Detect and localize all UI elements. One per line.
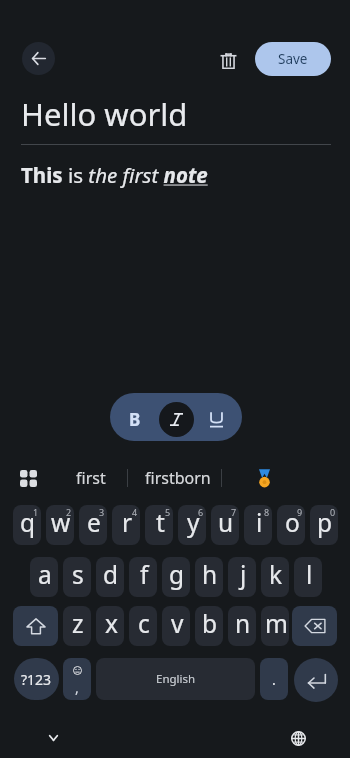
staticText: 8 [264,506,270,518]
staticText: This is the first note [21,161,208,189]
staticText: r [122,506,133,539]
staticText: 2 [66,506,72,518]
staticText: 7 [231,506,237,518]
staticText: n [235,607,251,640]
button[interactable]: English [96,658,255,700]
button[interactable]: c [129,606,157,646]
staticText: a [38,558,52,591]
staticText: d [103,558,119,591]
staticText: p [317,506,333,539]
staticText: x [105,607,118,640]
button[interactable]: firstborn [133,456,223,500]
button[interactable]: Change language [278,718,318,758]
staticText: firstborn [145,467,211,489]
button[interactable]: ?123 [14,658,59,700]
staticText: f [140,558,149,591]
button[interactable]: p [310,505,338,545]
button[interactable]: h [195,557,223,597]
staticText: ?123 [21,670,52,689]
button[interactable]: Underline [198,401,235,438]
button[interactable]: . [260,658,288,700]
button[interactable]: Backspace [292,606,337,646]
staticText: , [75,678,79,697]
button[interactable]: z [63,606,91,646]
button[interactable]: v [162,606,190,646]
staticText: g [169,558,185,591]
staticText: b [202,607,218,640]
staticText: z [72,607,84,640]
button[interactable]: , [63,658,91,700]
staticText: English [156,671,196,687]
button[interactable]: Delete [210,43,246,79]
staticText: h [202,558,218,591]
staticText: t [156,506,165,539]
button[interactable]: r [112,505,140,545]
staticText: 0 [330,506,336,518]
staticText: s [72,558,84,591]
staticText: 3 [99,506,105,518]
button[interactable]: Enter [294,658,338,702]
button[interactable]: first [52,456,130,500]
button[interactable]: Emoji suggestion [228,456,300,500]
staticText: 5 [165,506,171,518]
button[interactable]: Hide keyboard [33,718,73,758]
staticText: l [306,558,313,591]
button[interactable]: t [145,505,173,545]
staticText: Hello world [21,93,188,135]
button[interactable]: q [13,505,41,545]
button[interactable]: a [30,557,58,597]
staticText: e [87,506,101,539]
button[interactable]: g [162,557,190,597]
staticText: w [51,506,71,539]
button[interactable]: s [63,557,91,597]
button[interactable]: b [195,606,223,646]
button[interactable]: Keyboard options [12,462,45,495]
staticText: . [272,670,276,689]
button[interactable]: Back [22,42,55,75]
staticText: c [138,607,150,640]
staticText: Save [278,50,308,68]
button[interactable]: Shift [13,606,58,646]
button[interactable]: d [96,557,124,597]
staticText: u [218,506,234,539]
staticText: 9 [297,506,303,518]
button[interactable]: Italic [159,402,194,437]
button[interactable]: l [294,557,322,597]
staticText: i [256,506,263,539]
staticText: o [285,506,300,539]
staticText: 6 [198,506,204,518]
staticText: 1 [33,506,39,518]
button[interactable]: Save [255,42,331,76]
staticText: y [187,506,200,539]
button[interactable]: i [244,505,272,545]
button[interactable]: u [211,505,239,545]
staticText: m [265,607,288,640]
button[interactable]: k [261,557,289,597]
staticText: q [20,506,36,539]
staticText: 4 [132,506,138,518]
button[interactable]: o [277,505,305,545]
button[interactable]: Bold [116,401,153,438]
staticText: first [76,467,106,489]
button[interactable]: f [129,557,157,597]
button[interactable]: j [228,557,256,597]
button[interactable]: m [261,606,289,646]
button[interactable]: w [46,505,74,545]
staticText: k [269,558,283,591]
button[interactable]: n [228,606,256,646]
button[interactable]: y [178,505,206,545]
button[interactable]: e [79,505,107,545]
button[interactable]: x [96,606,124,646]
staticText: B [129,408,141,431]
staticText: v [171,607,184,640]
staticText: j [240,558,247,591]
